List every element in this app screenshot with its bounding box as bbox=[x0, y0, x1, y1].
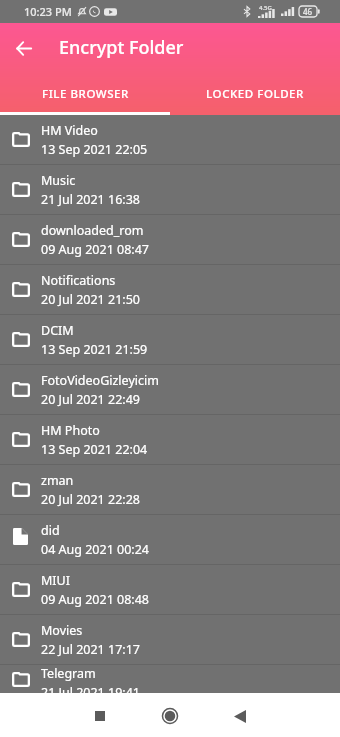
staticText: 04 Aug 2021 00:24 bbox=[41, 541, 150, 558]
staticText: MIUI bbox=[41, 572, 70, 589]
staticText: DCIM bbox=[41, 322, 74, 339]
staticText: 09 Aug 2021 08:47 bbox=[41, 241, 150, 258]
button[interactable]: LOCKED FOLDER bbox=[170, 86, 340, 102]
staticText: FILE BROWSER bbox=[42, 86, 129, 102]
staticText: 4.5G bbox=[259, 4, 272, 12]
button[interactable]: HM Photo bbox=[0, 415, 340, 464]
staticText: HM Photo bbox=[41, 422, 100, 439]
staticText: downloaded_rom bbox=[41, 222, 144, 239]
button[interactable]: Notifications bbox=[0, 265, 340, 314]
button[interactable]: FILE BROWSER bbox=[0, 86, 170, 102]
staticText: 20 Jul 2021 22:28 bbox=[41, 491, 140, 508]
button[interactable]: Back bbox=[6, 31, 41, 66]
staticText: 10:23 PM bbox=[24, 4, 72, 19]
staticText: 21 Jul 2021 19:41 bbox=[41, 684, 140, 693]
button[interactable]: Recents bbox=[74, 694, 126, 737]
button[interactable]: downloaded_rom bbox=[0, 215, 340, 264]
button[interactable]: zman bbox=[0, 465, 340, 514]
staticText: Movies bbox=[41, 622, 83, 639]
staticText: 46 bbox=[303, 6, 313, 17]
staticText: did bbox=[41, 522, 60, 539]
staticText: 13 Sep 2021 22:05 bbox=[41, 141, 148, 158]
button[interactable]: Movies bbox=[0, 615, 340, 664]
staticText: 13 Sep 2021 21:59 bbox=[41, 341, 148, 358]
button[interactable]: Telegram bbox=[0, 665, 340, 693]
button[interactable]: Music bbox=[0, 165, 340, 214]
staticText: LOCKED FOLDER bbox=[206, 86, 304, 102]
staticText: 21 Jul 2021 16:38 bbox=[41, 191, 140, 208]
staticText: Telegram bbox=[41, 665, 96, 682]
button[interactable]: Back bbox=[214, 694, 266, 737]
staticText: Music bbox=[41, 172, 76, 189]
button[interactable]: did bbox=[0, 515, 340, 564]
button[interactable]: MIUI bbox=[0, 565, 340, 614]
staticText: 20 Jul 2021 21:50 bbox=[41, 291, 140, 308]
staticText: 09 Aug 2021 08:48 bbox=[41, 591, 150, 608]
staticText: Notifications bbox=[41, 272, 116, 289]
staticText: Encrypt Folder bbox=[59, 35, 184, 60]
button[interactable]: FotoVideoGizleyicim bbox=[0, 365, 340, 414]
staticText: 13 Sep 2021 22:04 bbox=[41, 441, 148, 458]
staticText: zman bbox=[41, 472, 74, 489]
button[interactable]: HM Video bbox=[0, 115, 340, 164]
button[interactable]: Home bbox=[144, 694, 196, 737]
staticText: 20 Jul 2021 22:49 bbox=[41, 391, 140, 408]
button[interactable]: DCIM bbox=[0, 315, 340, 364]
staticText: 22 Jul 2021 17:17 bbox=[41, 641, 140, 658]
staticText: FotoVideoGizleyicim bbox=[41, 372, 159, 389]
staticText: HM Video bbox=[41, 122, 98, 139]
